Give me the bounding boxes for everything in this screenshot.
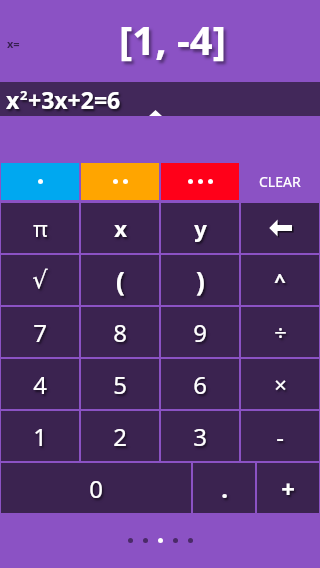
button[interactable]: 2 bbox=[81, 411, 159, 461]
staticText: 4 bbox=[33, 368, 47, 401]
staticText: 9 bbox=[193, 316, 207, 349]
staticText: ^ bbox=[274, 267, 286, 294]
staticText: y bbox=[194, 213, 207, 243]
button[interactable]: 3 bbox=[161, 411, 239, 461]
button[interactable]: × bbox=[241, 359, 319, 409]
staticText: 7 bbox=[33, 316, 47, 349]
button[interactable]: 8 bbox=[81, 307, 159, 357]
staticText: x bbox=[6, 84, 20, 115]
button[interactable]: 7 bbox=[1, 307, 79, 357]
button[interactable]: y bbox=[161, 203, 239, 253]
staticText: . bbox=[221, 472, 228, 505]
staticText: x= bbox=[7, 36, 20, 51]
staticText: 6 bbox=[193, 368, 207, 401]
staticText: √ bbox=[32, 266, 48, 294]
staticText: ( bbox=[116, 263, 125, 298]
button[interactable]: . bbox=[193, 463, 255, 513]
staticText: 2 bbox=[113, 420, 127, 453]
staticText: × bbox=[274, 369, 287, 399]
staticText: CLEAR bbox=[259, 172, 301, 191]
button[interactable]: 0 bbox=[1, 463, 191, 513]
button[interactable]: 6 bbox=[161, 359, 239, 409]
button[interactable]: Mode three dots bbox=[161, 163, 239, 200]
staticText: ÷ bbox=[274, 317, 287, 347]
button[interactable]: √ bbox=[1, 255, 79, 305]
staticText: 2 bbox=[20, 86, 28, 104]
staticText: x bbox=[114, 213, 127, 243]
staticText: 3 bbox=[193, 420, 207, 453]
staticText: 5 bbox=[113, 368, 127, 401]
staticText: ) bbox=[196, 263, 205, 298]
button[interactable]: x bbox=[0, 82, 320, 116]
staticText: π bbox=[33, 213, 48, 243]
staticText: - bbox=[276, 420, 284, 453]
button[interactable]: x bbox=[81, 203, 159, 253]
button[interactable]: Mode two dots bbox=[81, 163, 159, 200]
button[interactable]: + bbox=[257, 463, 319, 513]
button[interactable]: ÷ bbox=[241, 307, 319, 357]
button[interactable]: 5 bbox=[81, 359, 159, 409]
button[interactable]: CLEAR bbox=[240, 163, 320, 200]
staticText: +3x+2=6 bbox=[28, 84, 121, 115]
staticText: [1, -4] bbox=[119, 12, 226, 66]
staticText: + bbox=[281, 472, 295, 505]
button[interactable]: Mode one dot bbox=[1, 163, 79, 200]
button[interactable]: 9 bbox=[161, 307, 239, 357]
button[interactable]: 1 bbox=[1, 411, 79, 461]
button[interactable]: ( bbox=[81, 255, 159, 305]
button[interactable]: π bbox=[1, 203, 79, 253]
button[interactable]: Backspace bbox=[241, 203, 319, 253]
button[interactable]: ^ bbox=[241, 255, 319, 305]
button[interactable]: ) bbox=[161, 255, 239, 305]
staticText: 0 bbox=[89, 472, 103, 505]
staticText: 8 bbox=[113, 316, 127, 349]
staticText: 1 bbox=[33, 420, 47, 453]
button[interactable]: 4 bbox=[1, 359, 79, 409]
button[interactable]: - bbox=[241, 411, 319, 461]
